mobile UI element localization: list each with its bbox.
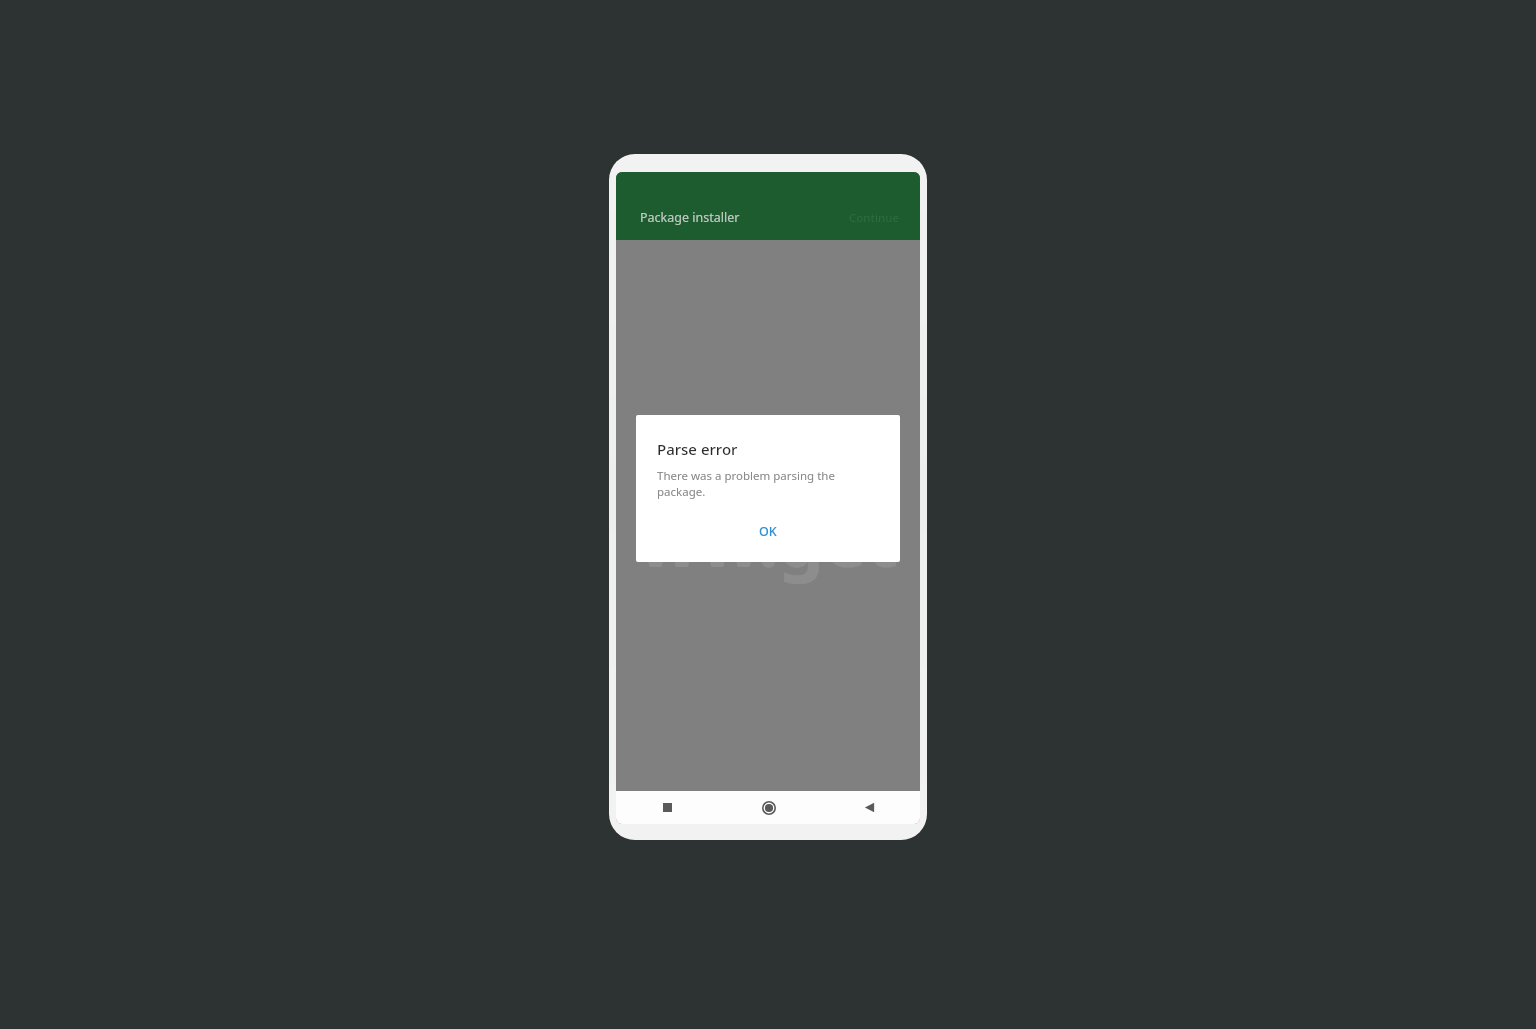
button[interactable]: Package installer xyxy=(616,205,839,230)
staticText: Package installer xyxy=(640,209,740,226)
button[interactable]: Recents xyxy=(616,791,718,824)
staticText: OK xyxy=(759,523,777,540)
staticText: Parse error xyxy=(657,439,738,459)
staticText: ww.get xyxy=(638,490,899,588)
staticText: There was a problem parsing the package. xyxy=(657,468,886,500)
button[interactable]: Continue xyxy=(839,206,920,230)
button[interactable]: Home xyxy=(718,791,819,824)
staticText: Continue xyxy=(849,210,900,226)
button[interactable]: Back xyxy=(819,791,920,824)
button[interactable]: OK xyxy=(741,515,795,548)
